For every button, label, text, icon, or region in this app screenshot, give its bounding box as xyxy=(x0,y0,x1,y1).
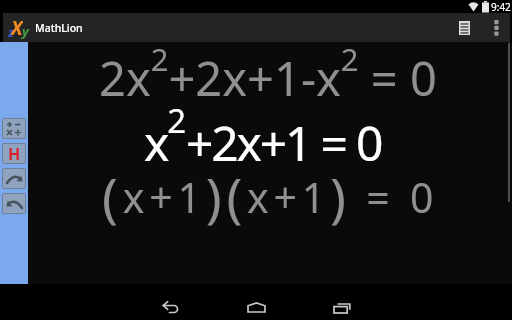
staticText: 9:42 xyxy=(491,0,511,13)
staticText: MathLion xyxy=(35,21,83,35)
button[interactable] xyxy=(2,118,26,139)
button[interactable] xyxy=(228,284,284,320)
staticText: H xyxy=(8,143,21,164)
staticText: X xyxy=(11,15,23,39)
staticText: x2+2x+1 = 0 xyxy=(144,98,382,175)
button[interactable] xyxy=(2,193,26,214)
staticText: 2x2+2x+1-x2 = 0 xyxy=(99,38,437,109)
button[interactable]: z xyxy=(8,16,34,40)
button[interactable] xyxy=(314,284,370,320)
staticText: y xyxy=(22,22,29,40)
button[interactable] xyxy=(455,19,473,37)
button[interactable] xyxy=(489,16,503,40)
button[interactable]: H xyxy=(2,143,26,164)
staticText: z xyxy=(8,24,14,40)
button[interactable] xyxy=(143,284,199,320)
button[interactable] xyxy=(2,168,26,189)
staticText: (x+1)(x+1) = 0 xyxy=(102,160,439,232)
